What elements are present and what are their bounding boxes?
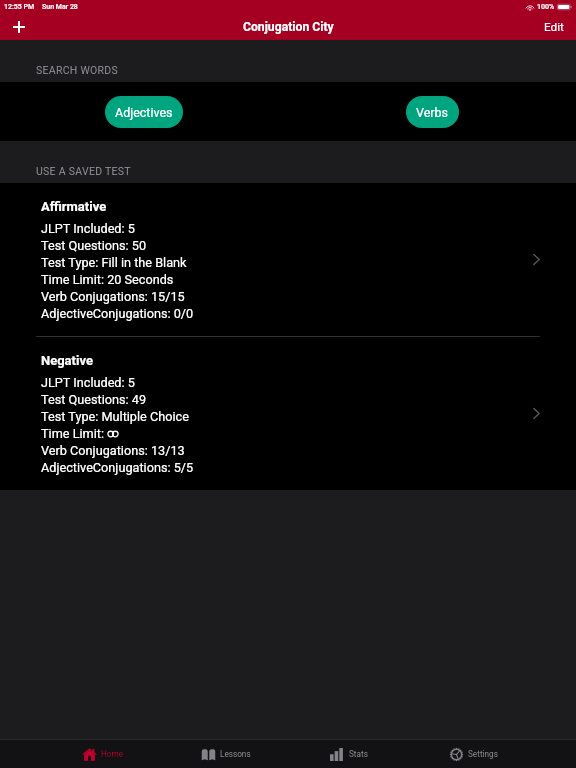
button[interactable]: Stats — [287, 740, 411, 768]
staticText: Edit — [544, 20, 564, 34]
staticText: AdjectiveConjugations: 5/5 — [41, 460, 194, 475]
staticText: Time Limit: 20 Seconds — [41, 272, 174, 287]
button[interactable]: Lessons — [164, 740, 287, 768]
button[interactable]: Negative — [0, 337, 576, 490]
staticText: Verbs — [416, 105, 449, 120]
staticText: Test Type: Multiple Choice — [41, 409, 189, 424]
staticText: JLPT Included: 5 — [41, 221, 135, 236]
staticText: Adjectives — [115, 105, 173, 120]
staticText: Stats — [349, 749, 368, 759]
staticText: Test Questions: 50 — [41, 238, 147, 253]
staticText: Home — [101, 749, 124, 759]
staticText: Test Questions: 49 — [41, 392, 147, 407]
button[interactable]: Verbs — [406, 96, 459, 128]
staticText: SEARCH WORDS — [36, 64, 118, 76]
staticText: 100% — [537, 3, 555, 11]
staticText: JLPT Included: 5 — [41, 375, 135, 390]
staticText: Test Type: Fill in the Blank — [41, 255, 187, 270]
staticText: Conjugation City — [243, 20, 334, 34]
staticText: Affirmative — [41, 199, 107, 214]
staticText: Negative — [41, 353, 93, 368]
button[interactable]: Affirmative — [0, 183, 576, 336]
staticText: AdjectiveConjugations: 0/0 — [41, 306, 194, 321]
button[interactable]: Settings — [411, 740, 535, 768]
staticText: Verb Conjugations: 13/13 — [41, 443, 185, 458]
staticText: Verb Conjugations: 15/15 — [41, 289, 185, 304]
staticText: USE A SAVED TEST — [36, 165, 131, 177]
staticText: 12:55 PM — [4, 3, 35, 11]
button[interactable]: Add test — [0, 14, 38, 40]
staticText: Time Limit: — [41, 426, 108, 441]
button[interactable]: Edit — [532, 14, 576, 40]
staticText: Lessons — [220, 749, 251, 759]
button[interactable]: Adjectives — [105, 96, 183, 128]
staticText: Settings — [468, 749, 498, 759]
button[interactable]: Home — [41, 740, 164, 768]
staticText: Sun Mar 28 — [42, 3, 78, 11]
